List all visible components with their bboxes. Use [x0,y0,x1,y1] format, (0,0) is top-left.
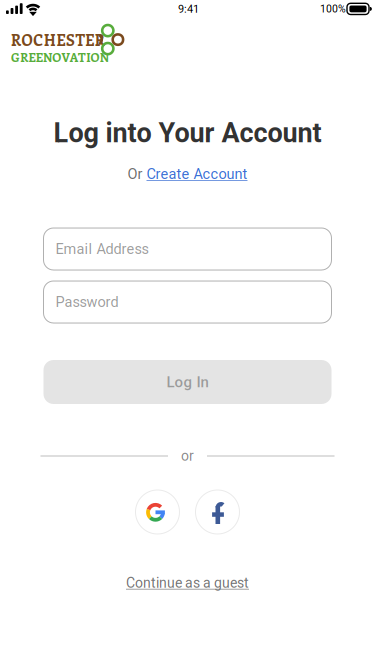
staticText: Email Address [55,241,148,257]
staticText: Or [127,166,142,182]
button[interactable]: Password [43,281,331,323]
staticText: or [181,448,194,464]
staticText: 100% [320,3,346,15]
staticText: Log In [166,373,208,390]
staticText: Create Account [146,166,247,182]
button[interactable]: Sign in with Facebook [195,490,239,534]
staticText: Continue as a guest [126,575,249,591]
staticText: ROCHESTER [11,30,105,50]
button[interactable]: Email Address [43,228,331,270]
staticText: Log into Your Account [53,118,321,148]
button[interactable]: Create Account [146,166,247,182]
staticText: GREENOVATION [11,49,109,65]
staticText: Password [55,294,118,310]
button[interactable]: Sign in with Google [135,490,179,534]
staticText: 9:41 [178,3,199,15]
button[interactable]: Log In [43,360,331,404]
button[interactable]: Continue as a guest [126,575,249,591]
